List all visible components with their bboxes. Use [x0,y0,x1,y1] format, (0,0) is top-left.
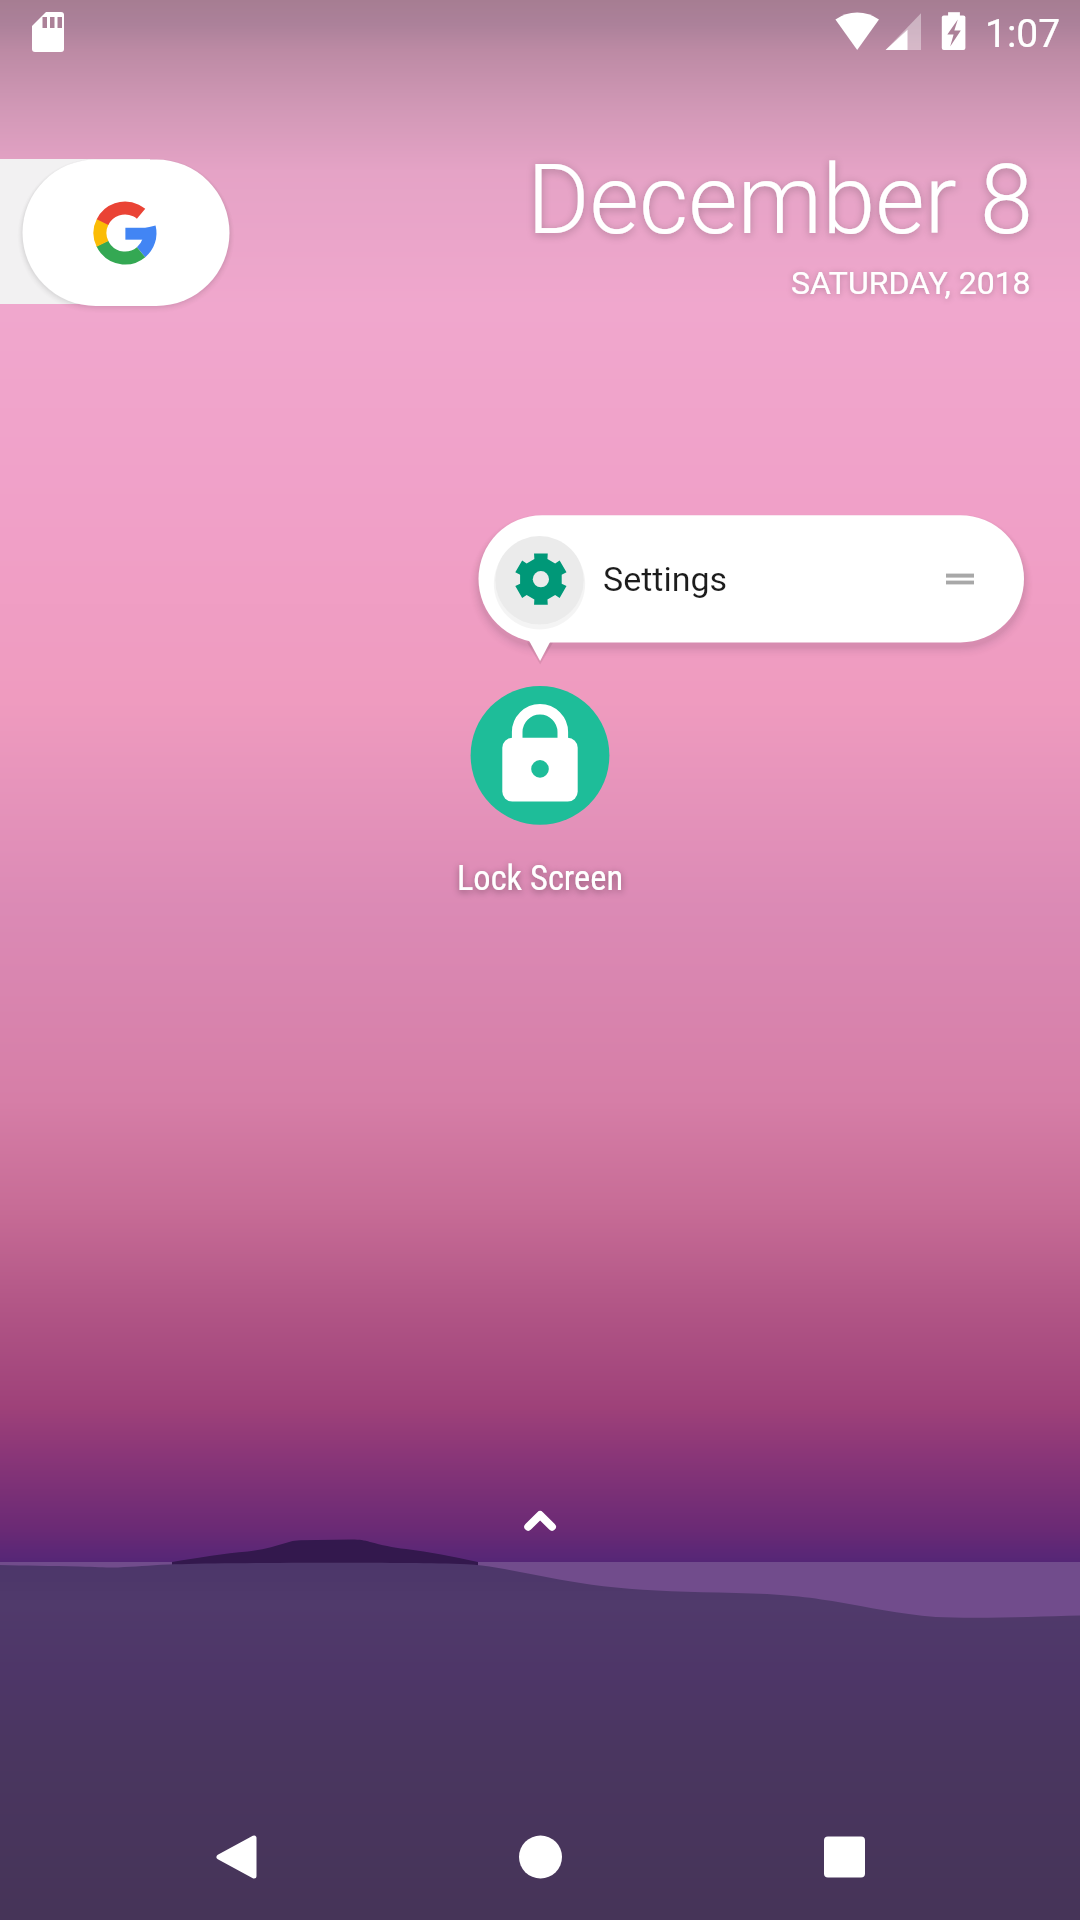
staticText: 1:07 [985,11,1061,57]
staticText: December 8 [527,144,1033,256]
staticText: Settings [603,559,728,599]
button[interactable]: Home [493,1810,587,1904]
staticText: Lock Screen [455,858,625,898]
button[interactable]: Open app drawer [490,1485,590,1555]
button[interactable]: Settings [478,514,1024,642]
button[interactable]: Google search [0,158,232,306]
staticText: SATURDAY, 2018 [791,264,1031,302]
button[interactable]: Lock Screen [440,682,640,894]
button[interactable]: Back [190,1810,284,1904]
button[interactable]: Recent apps [797,1810,891,1904]
